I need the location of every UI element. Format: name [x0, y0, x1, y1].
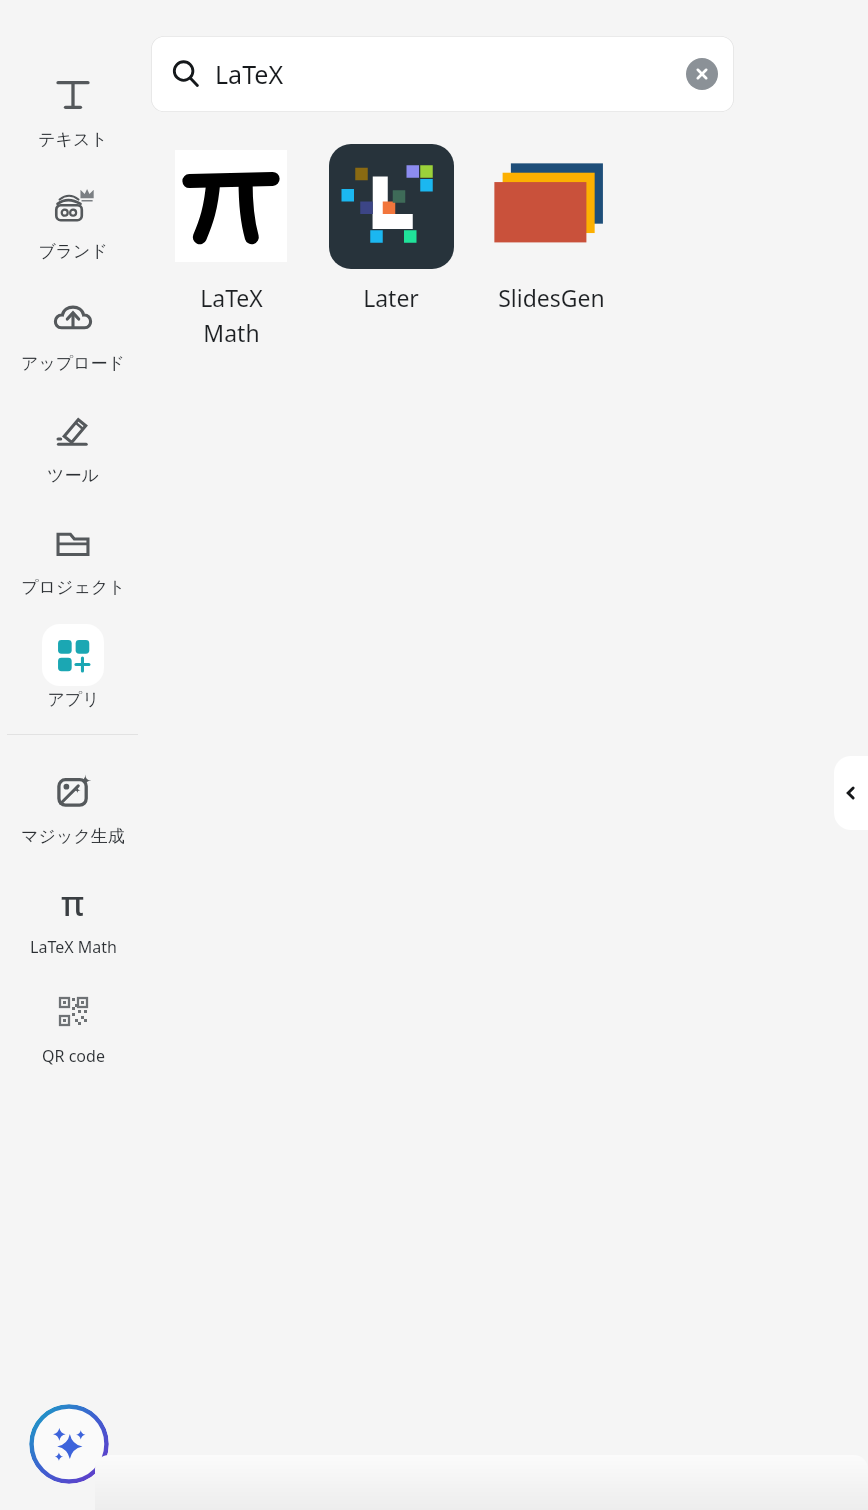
button[interactable]: LaTeX Math [151, 140, 311, 349]
staticText: QR code [42, 1045, 105, 1067]
button[interactable]: アプリ [14, 622, 132, 712]
button[interactable]: π [14, 869, 132, 960]
staticText: テキスト [38, 129, 108, 150]
button[interactable]: Collapse panel [834, 756, 868, 830]
button[interactable]: Magic assistant [29, 1404, 109, 1484]
button[interactable]: マジック生成 [14, 759, 132, 849]
other: Search [171, 59, 201, 89]
button[interactable]: ツール [14, 398, 132, 488]
button[interactable]: Search [151, 36, 734, 112]
button[interactable]: Later [311, 140, 471, 313]
staticText: LaTeX Math [200, 282, 263, 349]
staticText: アップロード [21, 353, 125, 374]
button[interactable]: アップロード [14, 286, 132, 376]
staticText: ブランド [38, 241, 108, 262]
button[interactable]: QR code [14, 978, 132, 1069]
button[interactable]: SlidesGen [471, 140, 631, 313]
staticText: ツール [47, 465, 99, 486]
staticText: Later [363, 282, 419, 313]
staticText: LaTeX Math [30, 936, 117, 958]
staticText: アプリ [47, 689, 100, 710]
button[interactable]: テキスト [14, 62, 132, 152]
staticText: SlidesGen [498, 282, 605, 313]
staticText: プロジェクト [21, 577, 126, 598]
button[interactable]: Clear search [686, 58, 718, 90]
staticText: LaTeX [215, 57, 284, 91]
button[interactable]: ブランド [14, 174, 132, 264]
staticText: マジック生成 [21, 826, 125, 847]
button[interactable]: プロジェクト [14, 510, 132, 600]
staticText: π [61, 880, 85, 924]
